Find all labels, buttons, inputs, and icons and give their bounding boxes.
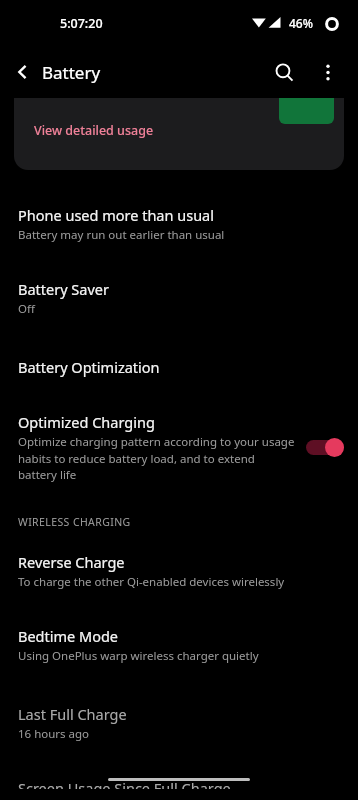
button[interactable]: Phone used more than usual <box>0 194 358 254</box>
button[interactable]: Last Full Charge <box>0 693 358 753</box>
button[interactable]: Search <box>264 52 304 92</box>
button[interactable]: More options <box>308 52 348 92</box>
button[interactable]: View detailed usage <box>14 98 344 170</box>
staticText: 16 hours ago <box>18 726 90 742</box>
staticText: WIRELESS CHARGING <box>18 515 131 529</box>
staticText: Bedtime Mode <box>18 626 119 646</box>
staticText: Optimized Charging <box>18 412 155 432</box>
staticText: Battery <box>42 61 101 84</box>
button[interactable]: Back <box>6 55 40 89</box>
button[interactable]: Optimized Charging <box>0 401 358 493</box>
staticText: Optimize charging pattern according to y… <box>18 434 296 482</box>
staticText: Off <box>18 301 35 317</box>
button[interactable]: Optimized Charging toggle <box>306 437 344 457</box>
staticText: Using OnePlus warp wireless charger quie… <box>18 648 259 664</box>
staticText: View detailed usage <box>34 122 154 139</box>
staticText: Phone used more than usual <box>18 205 214 225</box>
staticText: Battery Saver <box>18 279 109 299</box>
button[interactable]: Screen Usage Since Full Charge <box>0 767 358 800</box>
staticText: Battery Optimization <box>18 357 160 377</box>
button[interactable]: Reverse Charge <box>0 541 358 601</box>
staticText: Reverse Charge <box>18 552 125 572</box>
staticText: 5:07:20 <box>60 15 103 32</box>
staticText: 46% <box>289 15 313 31</box>
staticText: To charge the other Qi-enabled devices w… <box>18 574 285 590</box>
button[interactable]: Battery Saver <box>0 268 358 328</box>
staticText: Battery may run out earlier than usual <box>18 227 225 243</box>
button[interactable]: Battery Optimization <box>0 346 358 388</box>
staticText: Screen Usage Since Full Charge <box>18 778 231 789</box>
button[interactable]: Bedtime Mode <box>0 615 358 675</box>
staticText: Last Full Charge <box>18 704 127 724</box>
